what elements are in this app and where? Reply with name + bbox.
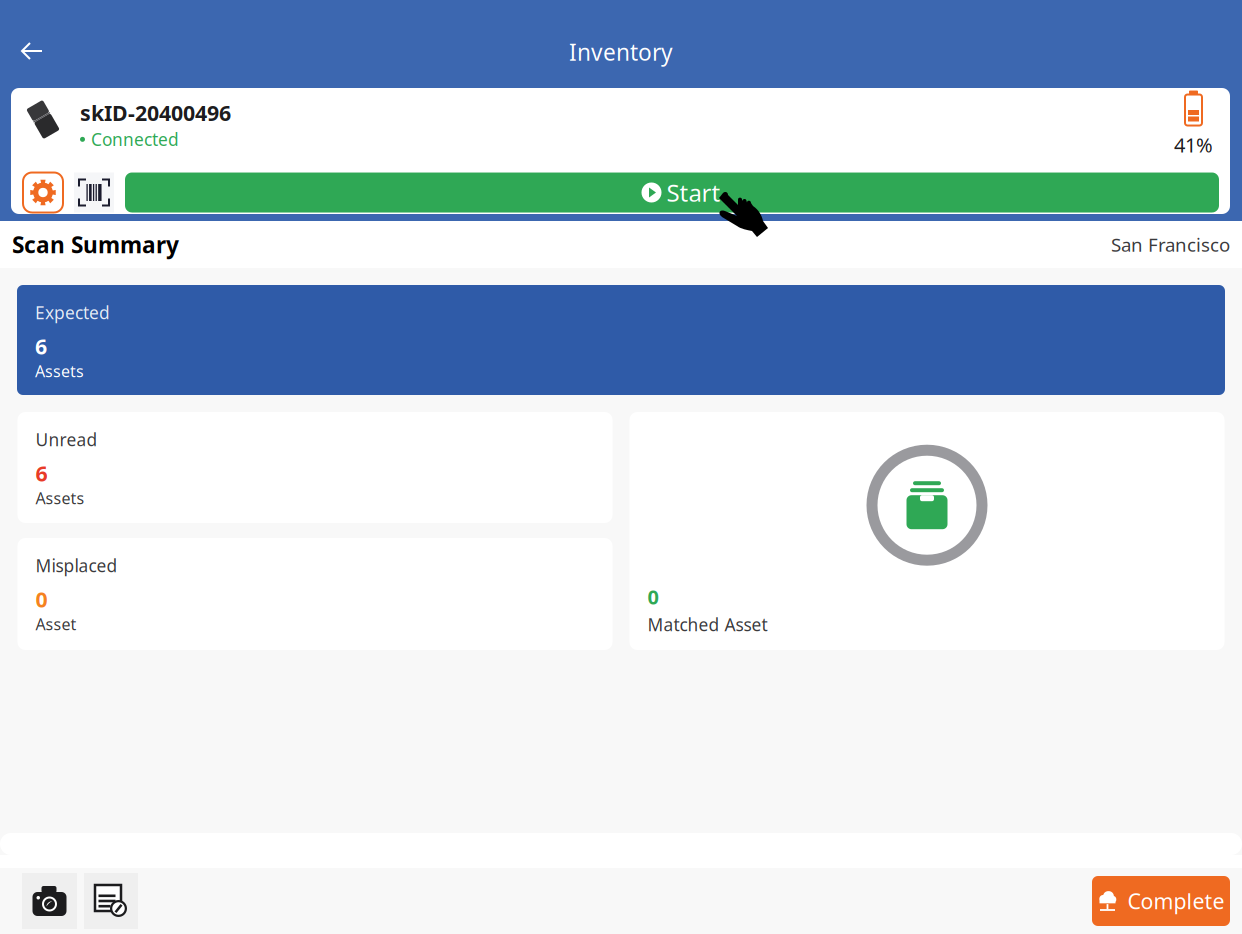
staticText: Expected — [35, 301, 110, 324]
staticText: Assets — [35, 487, 84, 508]
staticText: Matched Asset — [647, 613, 767, 636]
staticText: Inventory — [569, 37, 673, 67]
button[interactable]: Back — [0, 26, 58, 76]
staticText: San Francisco — [1111, 232, 1230, 257]
button[interactable]: Complete — [1092, 876, 1230, 926]
staticText: Scan Summary — [12, 229, 179, 259]
button[interactable]: Edit note — [84, 873, 138, 929]
staticText: 6 — [35, 332, 47, 360]
staticText: 0 — [35, 585, 47, 613]
staticText: Misplaced — [35, 554, 117, 577]
button[interactable]: Start — [125, 172, 1219, 212]
button[interactable]: Scan barcode — [74, 172, 114, 212]
staticText: skID-20400496 — [80, 98, 231, 127]
staticText: Complete — [1127, 887, 1224, 915]
staticText: Connected — [91, 128, 179, 151]
staticText: Assets — [35, 360, 84, 381]
staticText: 41% — [1174, 131, 1213, 158]
button[interactable]: Take photo — [22, 873, 77, 929]
staticText: Start — [666, 177, 720, 208]
staticText: Unread — [35, 428, 97, 451]
staticText: Asset — [35, 613, 76, 634]
button[interactable]: Settings — [23, 172, 63, 212]
staticText: 6 — [35, 459, 47, 487]
staticText: 0 — [647, 583, 658, 610]
